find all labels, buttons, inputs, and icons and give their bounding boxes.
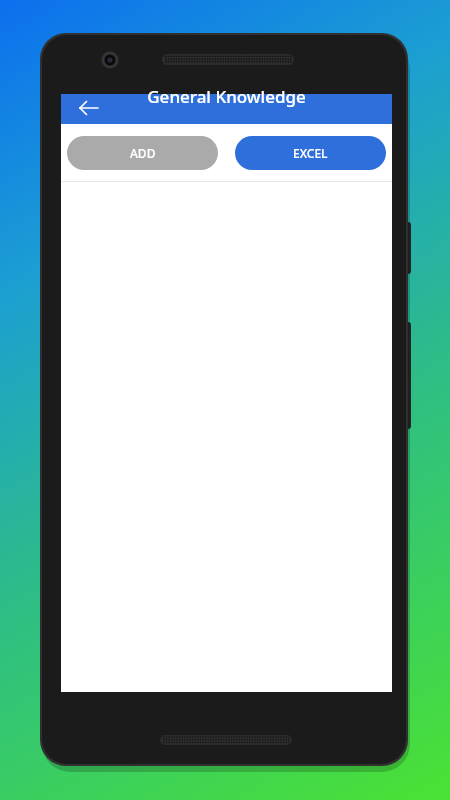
staticText: EXCEL <box>293 145 328 161</box>
button[interactable]: EXCEL <box>235 136 386 170</box>
button[interactable]: ADD <box>67 136 218 170</box>
button[interactable]: Back <box>69 94 105 124</box>
staticText: ADD <box>130 145 156 161</box>
staticText: General Knowledge <box>61 85 392 108</box>
